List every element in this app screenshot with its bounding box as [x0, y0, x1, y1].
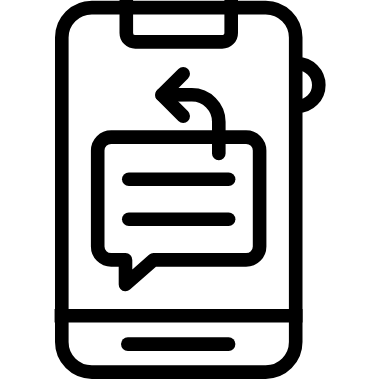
button[interactable]: Reply to message on phone	[0, 0, 380, 380]
